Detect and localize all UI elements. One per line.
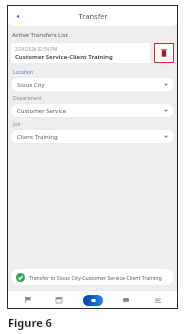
button[interactable]: Messages: [115, 291, 137, 309]
staticText: Transfer to Sioux City-Customer Service-…: [29, 274, 162, 281]
staticText: Customer Service-Client Training: [15, 53, 113, 61]
staticText: Client Training: [17, 133, 58, 141]
button[interactable]: Delete transfer: [154, 43, 174, 63]
button[interactable]: Menu: [147, 291, 169, 309]
staticText: Department: [13, 95, 42, 102]
button[interactable]: Back: [11, 10, 23, 22]
button[interactable]: Transfer to Sioux City-Customer Service-…: [11, 269, 174, 285]
staticText: Active Transfers List: [12, 31, 68, 39]
button[interactable]: Calendar: [48, 291, 70, 309]
button[interactable]: Flag: [17, 291, 39, 309]
staticText: Transfer: [78, 11, 108, 21]
button[interactable]: 2/24/2026 02:54 PM: [11, 43, 150, 63]
button[interactable]: Sioux City: [11, 78, 174, 91]
staticText: Location: [13, 69, 34, 76]
staticText: 2/24/2026 02:54 PM: [15, 46, 58, 52]
button[interactable]: Client Training: [11, 130, 174, 143]
staticText: Figure 6: [8, 315, 52, 330]
button[interactable]: Customer Service: [11, 104, 174, 117]
staticText: Customer Service: [17, 107, 67, 115]
button[interactable]: Transfer: [80, 291, 106, 309]
staticText: Job: [13, 121, 21, 128]
staticText: Sioux City: [17, 81, 45, 89]
